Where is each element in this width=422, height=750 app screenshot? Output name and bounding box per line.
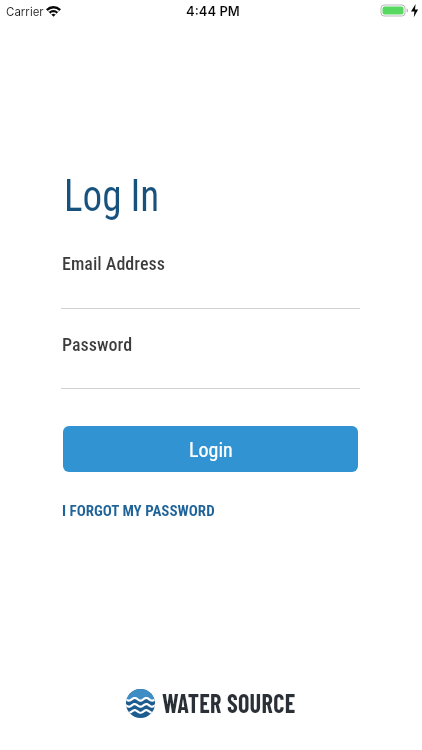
button[interactable]: Login [63, 426, 358, 472]
staticText: I FORGOT MY PASSWORD [62, 502, 215, 520]
button[interactable] [61, 252, 360, 310]
button[interactable] [61, 333, 360, 390]
staticText: 4:44 PM [186, 3, 240, 19]
button[interactable]: I FORGOT MY PASSWORD [62, 502, 215, 520]
staticText: Password [62, 334, 133, 355]
staticText: Email Address [62, 253, 165, 274]
staticText: WATER SOURCE [162, 687, 296, 718]
staticText: Carrier [6, 5, 44, 19]
staticText: Login [189, 438, 233, 461]
staticText: Log In [64, 169, 160, 222]
